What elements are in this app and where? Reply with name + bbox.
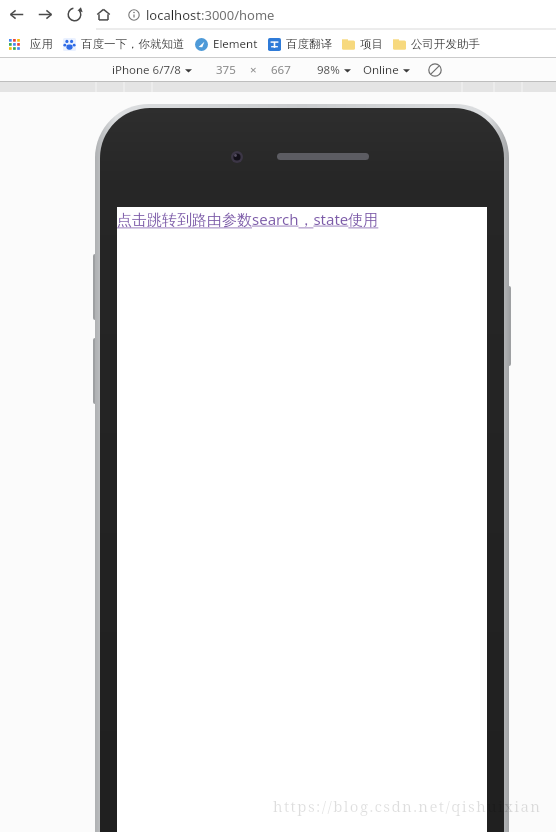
staticText: 98% xyxy=(317,62,340,78)
button[interactable]: 公司开发助手 xyxy=(388,32,485,56)
staticText: :3000/home xyxy=(201,6,275,24)
button[interactable]: 百度一下，你就知道 xyxy=(58,32,190,56)
button[interactable]: Element xyxy=(190,32,263,56)
button[interactable]: 百度翻译 xyxy=(263,32,337,56)
button[interactable]: 98% xyxy=(317,62,351,78)
staticText: https://blog.csdn.net/qishuixian xyxy=(273,796,542,816)
button[interactable]: Back xyxy=(2,0,31,29)
staticText: 375 xyxy=(216,62,236,78)
staticText: 667 xyxy=(271,62,291,78)
button[interactable]: 项目 xyxy=(337,32,388,56)
button[interactable]: iPhone 6/7/8 xyxy=(112,62,192,78)
staticText: 项目 xyxy=(360,37,383,51)
button[interactable]: localhost xyxy=(120,4,546,25)
button[interactable]: 应用 xyxy=(25,32,58,56)
button[interactable]: Reload xyxy=(60,0,89,29)
staticText: iPhone 6/7/8 xyxy=(112,62,181,78)
staticText: 公司开发助手 xyxy=(411,37,480,51)
button[interactable]: Forward xyxy=(31,0,60,29)
staticText: Element xyxy=(213,36,258,52)
button[interactable]: Toggle network throttling xyxy=(426,61,444,79)
staticText: 点击跳转到路由参数search，state使用 xyxy=(117,209,379,229)
staticText: 百度翻译 xyxy=(286,37,332,51)
staticText: 应用 xyxy=(30,37,53,51)
button[interactable]: 点击跳转到路由参数search，state使用 xyxy=(117,209,379,229)
button[interactable]: Apps xyxy=(3,33,25,55)
staticText: Online xyxy=(363,62,399,78)
button[interactable]: Online xyxy=(363,62,410,78)
button[interactable]: Home xyxy=(89,0,118,29)
staticText: localhost xyxy=(146,6,201,24)
staticText: 百度一下，你就知道 xyxy=(81,37,185,51)
staticText: × xyxy=(250,62,257,78)
